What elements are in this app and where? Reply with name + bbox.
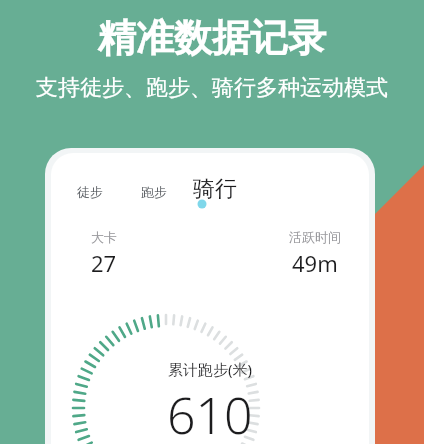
button[interactable]: 徒步 [73,181,107,203]
staticText: 跑步 [141,184,167,200]
staticText: 49m [292,248,338,278]
staticText: 累计跑步(米) [168,359,253,379]
staticText: 27 [91,248,117,278]
staticText: 支持徒步、跑步、骑行多种运动模式 [36,74,388,102]
staticText: 活跃时间 [289,229,341,245]
staticText: 徒步 [77,184,103,200]
button[interactable]: 骑行 [189,175,241,203]
staticText: 610 [167,381,253,444]
button[interactable]: 跑步 [137,181,171,203]
staticText: 精准数据记录 [98,14,326,62]
staticText: 大卡 [91,229,117,245]
staticText: 骑行 [193,175,237,203]
